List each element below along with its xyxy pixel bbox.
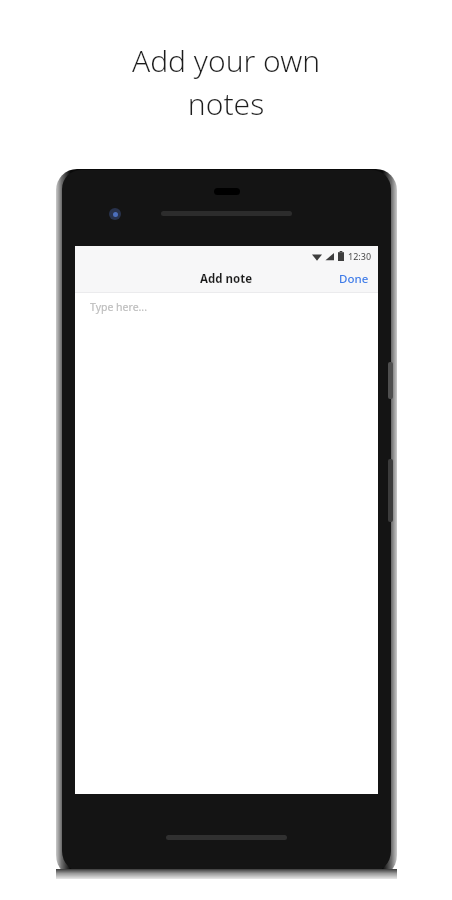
staticText: Add note <box>200 271 253 287</box>
staticText: Type here... <box>90 300 147 314</box>
staticText: 12:30 <box>348 250 372 262</box>
other: Battery <box>338 251 344 261</box>
staticText: Done <box>339 271 369 287</box>
staticText: Add your own notes <box>0 40 452 124</box>
other: Cellular signal <box>325 252 334 261</box>
other: Wi-Fi <box>312 252 322 261</box>
button[interactable]: Done <box>330 266 378 292</box>
